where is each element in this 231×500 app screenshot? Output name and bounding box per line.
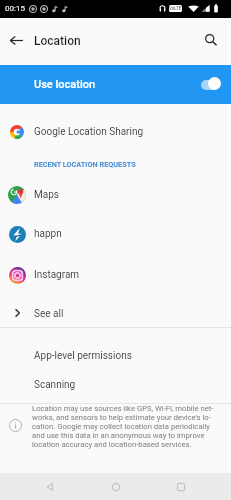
staticText: Scanning bbox=[34, 379, 76, 391]
staticText: App-level permissions bbox=[34, 350, 132, 362]
button[interactable]: Instagram bbox=[0, 257, 231, 293]
staticText: RECENT LOCATION REQUESTS bbox=[34, 160, 136, 169]
staticText: See all bbox=[34, 308, 64, 320]
button[interactable]: Home bbox=[101, 473, 131, 500]
button[interactable]: App-level permissions bbox=[0, 341, 231, 370]
button[interactable]: Use location bbox=[0, 65, 231, 104]
button[interactable]: Scanning bbox=[0, 370, 231, 399]
button[interactable]: Back bbox=[4, 28, 28, 52]
button[interactable]: Google Location Sharing bbox=[0, 114, 231, 150]
staticText: Maps bbox=[34, 189, 59, 201]
staticText: Google Location Sharing bbox=[34, 126, 144, 138]
staticText: 00:15 bbox=[5, 4, 25, 13]
button[interactable]: happn bbox=[0, 216, 231, 252]
button[interactable]: Recents bbox=[166, 473, 196, 500]
staticText: VoLTE bbox=[169, 6, 182, 11]
button[interactable]: See all bbox=[0, 296, 231, 332]
staticText: Use location bbox=[34, 78, 96, 91]
staticText: happn bbox=[34, 228, 62, 240]
staticText: Instagram bbox=[34, 269, 80, 281]
button[interactable]: Back bbox=[35, 473, 65, 500]
staticText: Location may use sources like GPS, Wi-Fi… bbox=[32, 404, 231, 449]
staticText: Location bbox=[34, 34, 81, 48]
button[interactable]: Search bbox=[199, 28, 223, 52]
button[interactable]: Maps bbox=[0, 177, 231, 213]
